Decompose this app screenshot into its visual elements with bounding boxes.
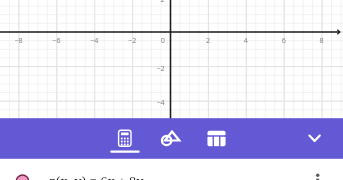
button[interactable]: Geometry [151,119,191,159]
button[interactable]: Collapse expression list [295,119,343,159]
button[interactable]: Calculator [105,119,145,159]
button[interactable]: z(x, y) = 6x + 8y [0,159,343,180]
staticText: z(x, y) = 6x + 8y [49,172,144,180]
button[interactable]: Table [196,119,236,159]
